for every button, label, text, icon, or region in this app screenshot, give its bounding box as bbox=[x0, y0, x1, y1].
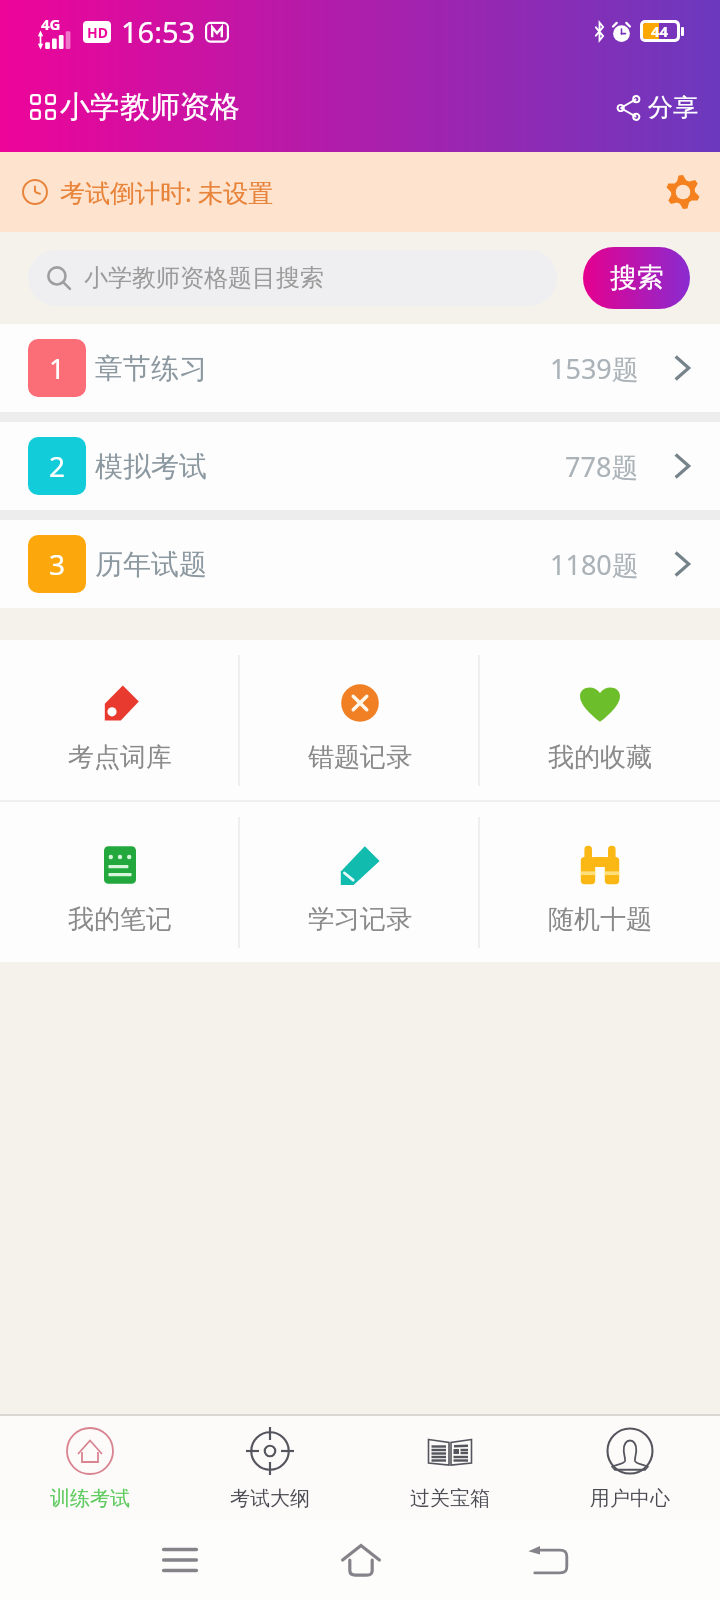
staticText: 章节练习 bbox=[95, 351, 207, 386]
staticText: 错题记录 bbox=[308, 741, 412, 774]
staticText: 我的收藏 bbox=[548, 741, 652, 774]
staticText: 过关宝箱 bbox=[410, 1486, 490, 1511]
staticText: 1180题 bbox=[550, 546, 639, 583]
button[interactable]: 训练考试 bbox=[0, 1416, 180, 1520]
button[interactable]: 学习记录 bbox=[240, 802, 480, 962]
staticText: 随机十题 bbox=[548, 903, 652, 936]
staticText: 1539题 bbox=[550, 350, 639, 387]
staticText: 考试倒计时: 未设置 bbox=[60, 175, 274, 209]
staticText: 训练考试 bbox=[50, 1486, 130, 1511]
staticText: 搜索 bbox=[610, 261, 664, 295]
button[interactable]: 搜索 bbox=[583, 247, 690, 309]
staticText: 历年试题 bbox=[95, 547, 207, 582]
button[interactable]: 2 bbox=[0, 422, 720, 510]
button[interactable]: 过关宝箱 bbox=[360, 1416, 540, 1520]
button[interactable]: 随机十题 bbox=[480, 802, 720, 962]
staticText: 我的笔记 bbox=[68, 903, 172, 936]
button[interactable]: Settings bbox=[646, 157, 720, 227]
button[interactable]: Recent apps bbox=[146, 1531, 214, 1589]
staticText: 16:53 bbox=[121, 12, 196, 51]
button[interactable]: Back bbox=[514, 1531, 582, 1589]
button[interactable]: 小学教师资格题目搜索 bbox=[28, 250, 557, 306]
button[interactable]: 考试大纲 bbox=[180, 1416, 360, 1520]
button[interactable]: 错题记录 bbox=[240, 640, 480, 800]
staticText: 学习记录 bbox=[308, 903, 412, 936]
button[interactable]: 3 bbox=[0, 520, 720, 608]
staticText: 2 bbox=[49, 447, 66, 485]
staticText: 3 bbox=[49, 545, 66, 583]
staticText: 模拟考试 bbox=[95, 449, 207, 484]
button[interactable]: 分享 bbox=[594, 78, 720, 137]
staticText: 用户中心 bbox=[590, 1486, 670, 1511]
button[interactable]: 我的笔记 bbox=[0, 802, 240, 962]
staticText: 小学教师资格题目搜索 bbox=[84, 263, 324, 293]
button[interactable]: Home bbox=[327, 1530, 395, 1590]
button[interactable]: 考点词库 bbox=[0, 640, 240, 800]
staticText: 分享 bbox=[648, 92, 698, 123]
staticText: 44 bbox=[651, 21, 669, 41]
button[interactable]: 1 bbox=[0, 324, 720, 412]
button[interactable]: 我的收藏 bbox=[480, 640, 720, 800]
staticText: HD bbox=[87, 23, 108, 42]
button[interactable]: 用户中心 bbox=[540, 1416, 720, 1520]
staticText: 778题 bbox=[565, 448, 639, 485]
button[interactable]: 考试倒计时: 未设置 bbox=[0, 152, 720, 232]
staticText: 小学教师资格 bbox=[60, 88, 240, 126]
staticText: 4G bbox=[41, 14, 61, 34]
staticText: 考试大纲 bbox=[230, 1486, 310, 1511]
staticText: 1 bbox=[49, 349, 66, 387]
staticText: 考点词库 bbox=[68, 741, 172, 774]
